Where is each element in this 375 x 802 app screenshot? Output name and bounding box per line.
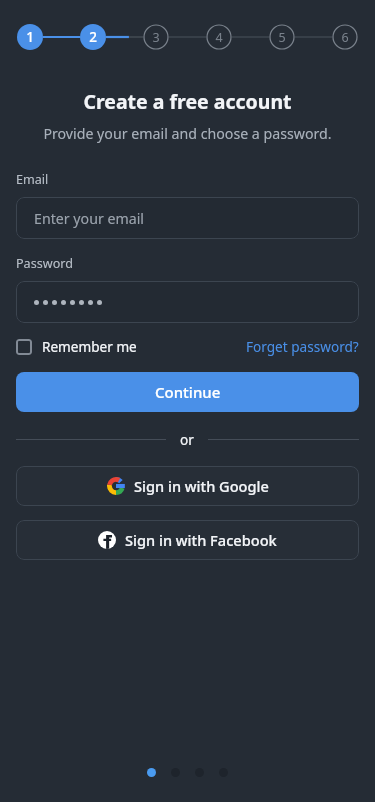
button[interactable]: Page 2 [171,768,180,777]
staticText: or [180,430,194,448]
staticText: 5 [278,29,286,46]
button[interactable]: Enter your email [16,197,359,239]
staticText: Provide your email and choose a password… [0,124,375,143]
button[interactable]: Continue [16,372,359,412]
button[interactable]: Remember me [16,337,137,356]
staticText: Create a free account [0,88,375,115]
button[interactable]: Sign in with Google [16,466,359,506]
staticText: 4 [215,29,223,46]
staticText: Enter your email [34,209,145,228]
button[interactable]: Step 1 [17,24,43,50]
staticText: Forget password? [246,337,359,356]
staticText: 6 [341,29,349,46]
staticText: 2 [89,28,97,46]
button[interactable]: Forget password? [246,337,359,356]
staticText: Password [16,255,73,272]
staticText: 3 [152,29,160,46]
button[interactable]: Page 3 [195,768,204,777]
button[interactable]: Step 4 [206,24,232,50]
button[interactable]: Step 6 [332,24,358,50]
button[interactable] [16,281,359,323]
staticText: Continue [155,382,221,402]
staticText: Remember me [42,337,137,356]
button[interactable]: Page 1 [147,768,156,777]
button[interactable]: Page 4 [219,768,228,777]
staticText: 1 [26,28,34,46]
staticText: Email [16,171,49,188]
button[interactable]: Step 3 [143,24,169,50]
button[interactable]: Step 5 [269,24,295,50]
staticText: Sign in with Facebook [125,530,277,550]
button[interactable]: Sign in with Facebook [16,520,359,560]
staticText: Sign in with Google [134,476,269,496]
button[interactable]: Step 2 [80,24,106,50]
